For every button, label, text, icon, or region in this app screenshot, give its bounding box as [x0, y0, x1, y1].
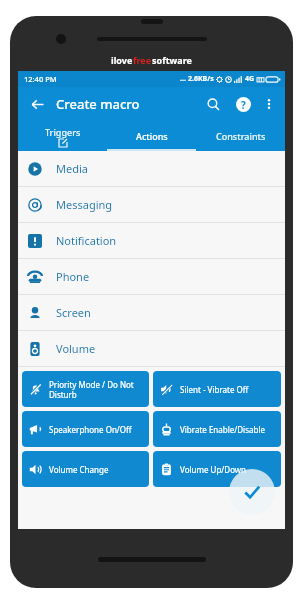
staticText: Priority Mode / Do Not Disturb — [49, 379, 145, 400]
staticText: Volume Up/Down — [180, 464, 247, 475]
button[interactable]: Actions — [107, 121, 196, 151]
staticText: Create macro — [56, 95, 140, 113]
button[interactable]: Save macro — [229, 469, 275, 515]
button[interactable]: Volume Change — [22, 451, 149, 487]
staticText: Silent - Vibrate Off — [180, 384, 249, 395]
staticText: Messaging — [56, 197, 113, 212]
staticText: Notification — [56, 233, 117, 248]
staticText: ? — [241, 98, 246, 112]
button[interactable]: Volume — [18, 331, 285, 367]
button[interactable]: Constraints — [196, 121, 285, 151]
button[interactable]: More options — [259, 94, 279, 114]
staticText: ilove — [111, 54, 133, 66]
button[interactable]: Speakerphone On/Off — [22, 411, 149, 447]
button[interactable]: Screen — [18, 295, 285, 331]
staticText: Actions — [136, 130, 168, 142]
button[interactable]: Media — [18, 151, 285, 187]
staticText: software — [152, 54, 192, 66]
staticText: Vibrate Enable/Disable — [180, 424, 265, 435]
staticText: Phone — [56, 269, 90, 284]
staticText: free — [133, 54, 152, 66]
button[interactable]: Back — [24, 91, 50, 117]
staticText: 2.6KB/s — [188, 74, 214, 84]
button[interactable]: Priority Mode / Do Not Disturb — [22, 371, 149, 407]
staticText: 12:40 PM — [24, 74, 57, 84]
button[interactable]: Messaging — [18, 187, 285, 223]
button[interactable]: Volume Up/Down — [153, 451, 281, 487]
staticText: Constraints — [216, 130, 266, 142]
staticText: Media — [56, 161, 88, 176]
staticText: Speakerphone On/Off — [49, 424, 132, 435]
button[interactable]: Vibrate Enable/Disable — [153, 411, 281, 447]
staticText: Triggers — [45, 126, 81, 138]
button[interactable]: Notification — [18, 223, 285, 259]
button[interactable]: Phone — [18, 259, 285, 295]
button[interactable]: Silent - Vibrate Off — [153, 371, 281, 407]
staticText: Volume Change — [49, 464, 109, 475]
staticText: ... — [180, 74, 186, 84]
button[interactable]: Search — [201, 92, 225, 116]
staticText: Screen — [56, 305, 91, 320]
button[interactable]: Help — [231, 92, 255, 116]
staticText: 4G — [245, 74, 255, 84]
staticText: Volume — [56, 341, 96, 356]
button[interactable]: Triggers — [18, 121, 107, 151]
